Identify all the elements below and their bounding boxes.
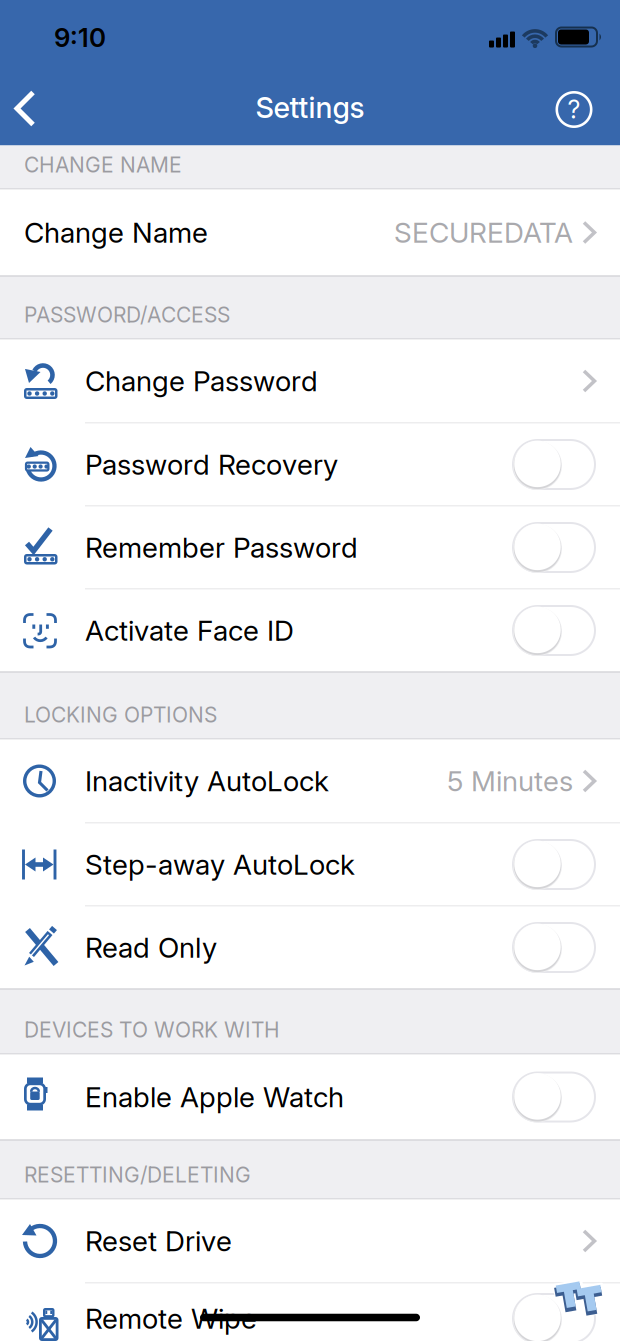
- button[interactable]: Activate Face ID: [0, 589, 620, 671]
- staticText: Settings: [255, 90, 364, 125]
- staticText: SECUREDATA: [394, 216, 573, 249]
- button[interactable]: Change Password: [0, 339, 620, 422]
- staticText: 5 Minutes: [447, 764, 573, 798]
- staticText: Step-away AutoLock: [85, 848, 355, 881]
- button[interactable]: Password Recovery: [0, 423, 620, 505]
- staticText: CHANGE NAME: [24, 152, 182, 177]
- staticText: 9:10: [54, 22, 106, 53]
- button[interactable]: Enable Apple Watch: [0, 1054, 620, 1139]
- button[interactable]: Read Only: [0, 906, 620, 988]
- staticText: ?: [567, 94, 580, 125]
- staticText: Enable Apple Watch: [85, 1080, 344, 1114]
- button[interactable]: Reset Drive: [0, 1199, 620, 1282]
- button[interactable]: Change Name: [0, 189, 620, 275]
- button[interactable]: Back: [14, 90, 38, 127]
- button[interactable]: Remember Password: [0, 506, 620, 588]
- staticText: Password Recovery: [85, 448, 338, 481]
- staticText: Remember Password: [85, 531, 358, 564]
- staticText: Activate Face ID: [85, 614, 294, 647]
- staticText: PASSWORD/ACCESS: [24, 302, 230, 327]
- staticText: Remote Wipe: [85, 1302, 257, 1335]
- button[interactable]: Inactivity AutoLock: [0, 739, 620, 822]
- staticText: DEVICES TO WORK WITH: [24, 1017, 280, 1042]
- staticText: RESETTING/DELETING: [24, 1162, 251, 1187]
- staticText: Change Password: [85, 364, 318, 398]
- staticText: Reset Drive: [85, 1224, 232, 1258]
- staticText: Inactivity AutoLock: [85, 764, 329, 798]
- button[interactable]: Step-away AutoLock: [0, 823, 620, 905]
- button[interactable]: Help: [555, 91, 592, 128]
- staticText: Change Name: [24, 216, 208, 249]
- button[interactable]: Remote Wipe: [0, 1283, 620, 1341]
- staticText: Read Only: [85, 931, 217, 964]
- staticText: LOCKING OPTIONS: [24, 702, 217, 727]
